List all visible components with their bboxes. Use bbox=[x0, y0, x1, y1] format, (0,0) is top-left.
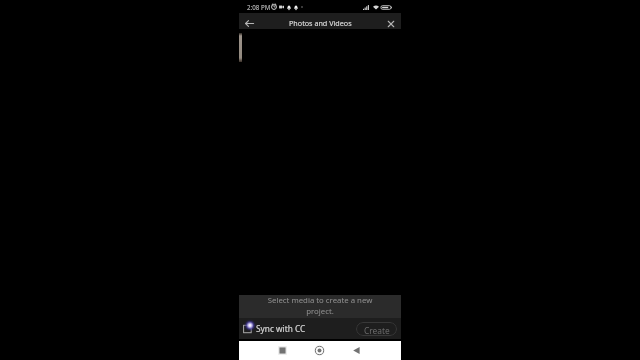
button[interactable]: Back bbox=[241, 15, 257, 31]
button[interactable]: Home bbox=[310, 341, 329, 360]
button[interactable]: Sync with CC bbox=[241, 321, 308, 336]
button[interactable]: Back bbox=[347, 341, 366, 360]
button[interactable]: Create bbox=[356, 322, 397, 336]
staticText: Sync with CC bbox=[256, 323, 306, 334]
button[interactable]: Recents bbox=[273, 341, 292, 360]
button[interactable]: Close bbox=[383, 16, 399, 32]
staticText: Select media to create a new project. bbox=[266, 295, 374, 317]
staticText: Photos and Videos bbox=[289, 18, 352, 28]
staticText: 2:08 PM bbox=[247, 3, 271, 11]
staticText: Create bbox=[364, 325, 390, 336]
